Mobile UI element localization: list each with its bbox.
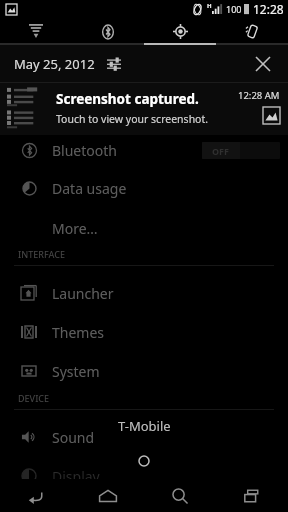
staticText: T-Mobile [118,417,171,435]
button[interactable]: Wifi [0,18,72,45]
staticText: Bluetooth [52,141,117,160]
button[interactable]: Themes [0,315,288,349]
button[interactable]: Bluetooth [72,18,144,45]
staticText: 100 [226,3,242,15]
staticText: DEVICE [18,392,50,404]
button[interactable]: System [0,354,288,388]
staticText: Touch to view your screenshot. [56,112,209,126]
button[interactable]: Screenshot captured. [0,83,288,135]
staticText: INTERFACE [18,248,65,260]
button[interactable]: Bluetooth [0,133,288,167]
staticText: Display [52,467,100,486]
staticText: OFF [212,145,230,157]
button[interactable]: Rotation [216,18,288,45]
button[interactable]: Display [0,459,288,493]
button[interactable]: Settings [105,55,123,73]
button[interactable]: Home [72,479,144,512]
staticText: Sound [52,428,95,447]
staticText: Data usage [52,179,127,198]
staticText: 12:28 AM [238,89,280,102]
staticText: System [52,362,100,381]
button[interactable]: Search [144,479,216,512]
button[interactable]: Back [0,479,72,512]
staticText: May 25, 2012 [14,55,95,73]
button[interactable]: Launcher [0,276,288,310]
button[interactable]: Recent apps [216,479,288,512]
button[interactable]: Data usage [0,171,288,205]
staticText: 12:28 [253,1,284,17]
staticText: Launcher [52,284,114,303]
button[interactable]: Clear all notifications [250,51,276,77]
staticText: H [207,2,212,10]
staticText: Screenshot captured. [56,90,199,108]
button[interactable]: Sound [0,420,288,454]
button[interactable]: OFF [202,142,280,159]
button[interactable]: More… [0,211,288,245]
button[interactable]: Location [144,18,216,45]
staticText: Themes [52,323,105,342]
staticText: More… [52,219,98,238]
